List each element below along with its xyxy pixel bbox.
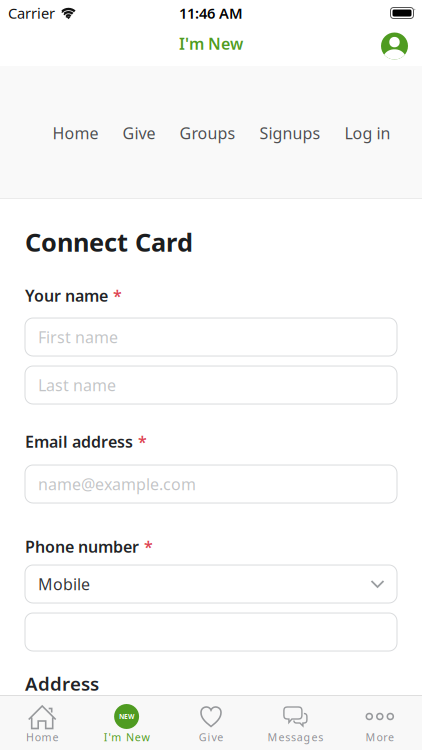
button[interactable]: Home <box>52 122 98 144</box>
button[interactable]: NEW <box>84 696 169 750</box>
staticText: * <box>138 431 147 452</box>
button[interactable]: First name <box>25 318 397 356</box>
staticText: Give <box>199 730 223 744</box>
staticText: Last name <box>38 374 116 396</box>
staticText: * <box>144 536 153 557</box>
button[interactable]: Signups <box>259 122 320 144</box>
staticText: I'm New <box>104 730 149 744</box>
staticText: First name <box>38 326 118 348</box>
button[interactable]: Profile <box>381 32 408 59</box>
staticText: Home <box>26 730 58 744</box>
button[interactable]: More <box>338 696 422 750</box>
staticText: Phone number <box>25 536 139 557</box>
button[interactable]: Messages <box>253 696 338 750</box>
button[interactable]: Give <box>122 122 155 144</box>
button[interactable]: Groups <box>179 122 235 144</box>
staticText: * <box>113 285 122 306</box>
staticText: Messages <box>268 730 323 744</box>
staticText: name@example.com <box>38 473 196 495</box>
staticText: Signups <box>259 122 320 144</box>
staticText: 11:46 AM <box>179 3 243 23</box>
button[interactable] <box>25 613 397 651</box>
staticText: Home <box>52 122 98 144</box>
button[interactable]: Log in <box>344 122 390 144</box>
staticText: Address <box>25 671 99 696</box>
staticText: Give <box>122 122 155 144</box>
staticText: Connect Card <box>25 225 193 259</box>
button[interactable]: Home <box>0 696 84 750</box>
staticText: Carrier <box>8 3 55 23</box>
staticText: Your name <box>25 285 108 306</box>
button[interactable]: Last name <box>25 366 397 404</box>
staticText: Email address <box>25 431 133 452</box>
button[interactable]: Give <box>169 696 253 750</box>
staticText: Groups <box>179 122 235 144</box>
button[interactable]: name@example.com <box>25 465 397 503</box>
staticText: NEW <box>119 712 134 721</box>
staticText: Log in <box>344 122 390 144</box>
staticText: More <box>366 730 394 744</box>
staticText: I'm New <box>179 33 243 54</box>
button[interactable]: Mobile <box>25 565 397 603</box>
staticText: Mobile <box>38 573 90 595</box>
